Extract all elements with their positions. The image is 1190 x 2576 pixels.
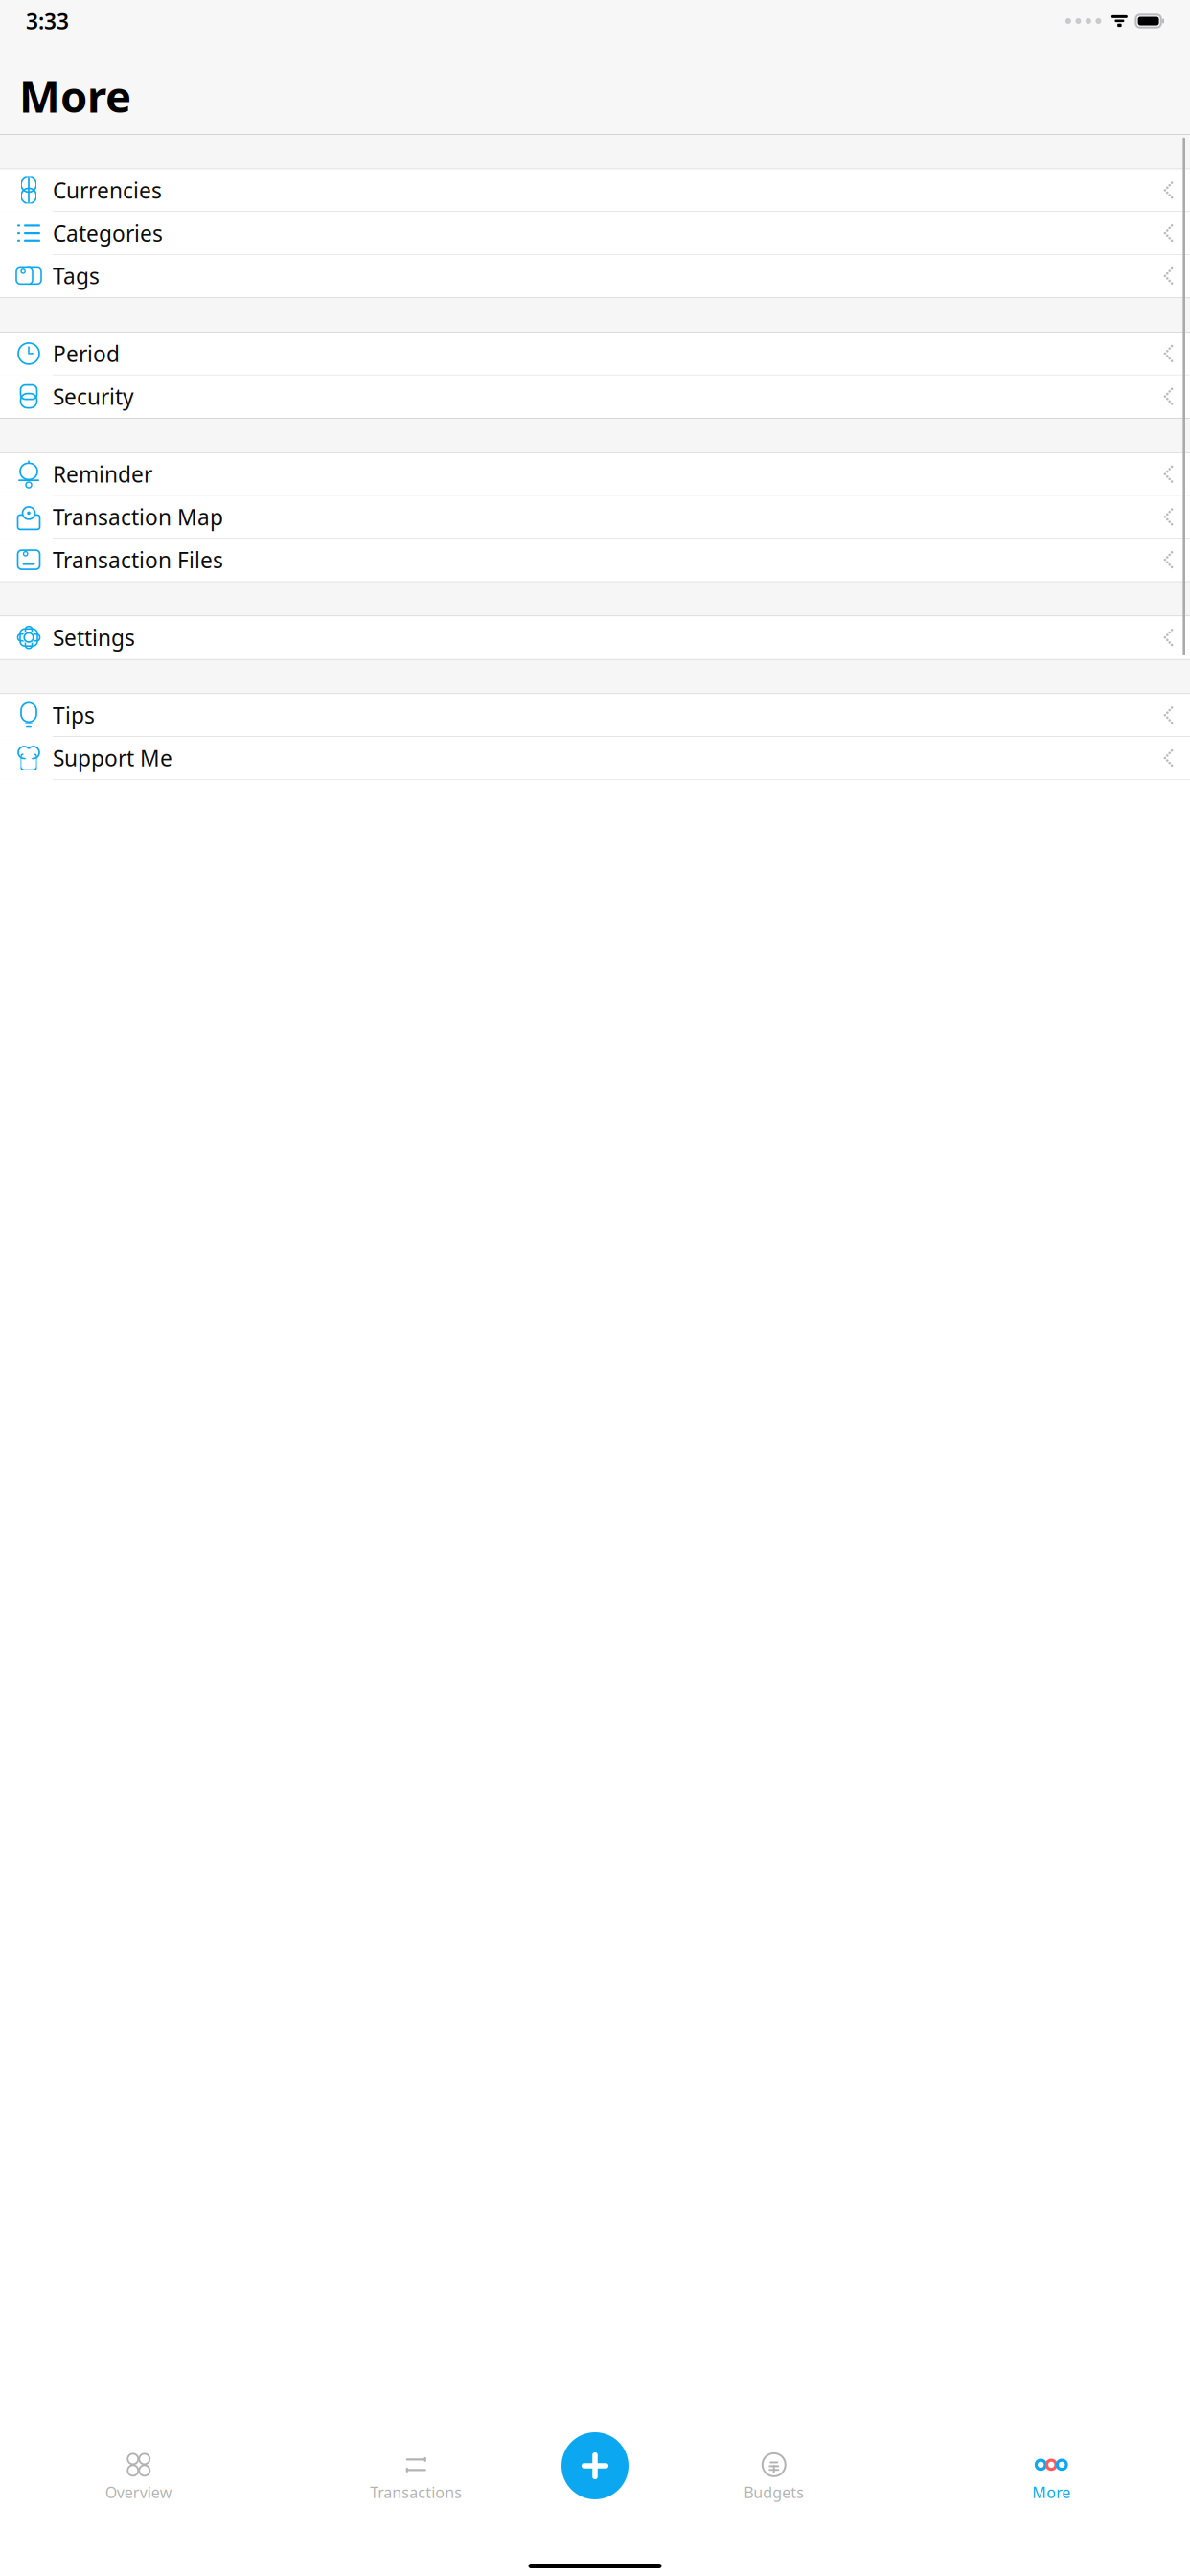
button[interactable]: Categories xyxy=(0,212,1190,255)
button[interactable]: More xyxy=(913,2451,1190,2503)
button[interactable]: Reminder xyxy=(0,453,1190,496)
staticText: Budgets xyxy=(744,2482,804,2502)
staticText: Tips xyxy=(53,701,95,730)
button[interactable]: Period xyxy=(0,332,1190,375)
staticText: Security xyxy=(53,382,134,411)
staticText: More xyxy=(1032,2482,1070,2502)
button[interactable]: Transaction Map xyxy=(0,496,1190,539)
button[interactable]: Support Me xyxy=(0,737,1190,780)
staticText: More xyxy=(19,67,131,125)
button[interactable]: Overview xyxy=(0,2451,277,2503)
button[interactable]: Settings xyxy=(0,616,1190,659)
staticText: Categories xyxy=(53,218,163,247)
button[interactable]: Currencies xyxy=(0,169,1190,212)
staticText: Tags xyxy=(53,261,100,290)
staticText: 3:33 xyxy=(26,7,69,35)
staticText: Transactions xyxy=(370,2482,462,2502)
button[interactable]: Add transaction xyxy=(561,2432,629,2499)
staticText: Support Me xyxy=(53,744,172,772)
staticText: Currencies xyxy=(53,176,162,205)
button[interactable]: Transaction Files xyxy=(0,539,1190,582)
staticText: Settings xyxy=(53,623,135,652)
staticText: Transaction Map xyxy=(53,502,223,531)
button[interactable]: Tags xyxy=(0,255,1190,298)
staticText: Overview xyxy=(105,2482,172,2502)
button[interactable]: Tips xyxy=(0,694,1190,737)
staticText: Reminder xyxy=(53,460,152,488)
button[interactable]: Budgets xyxy=(635,2451,913,2503)
staticText: Period xyxy=(53,339,120,368)
button[interactable]: Transactions xyxy=(277,2451,555,2503)
staticText: Transaction Files xyxy=(53,545,223,574)
button[interactable]: Security xyxy=(0,375,1190,418)
